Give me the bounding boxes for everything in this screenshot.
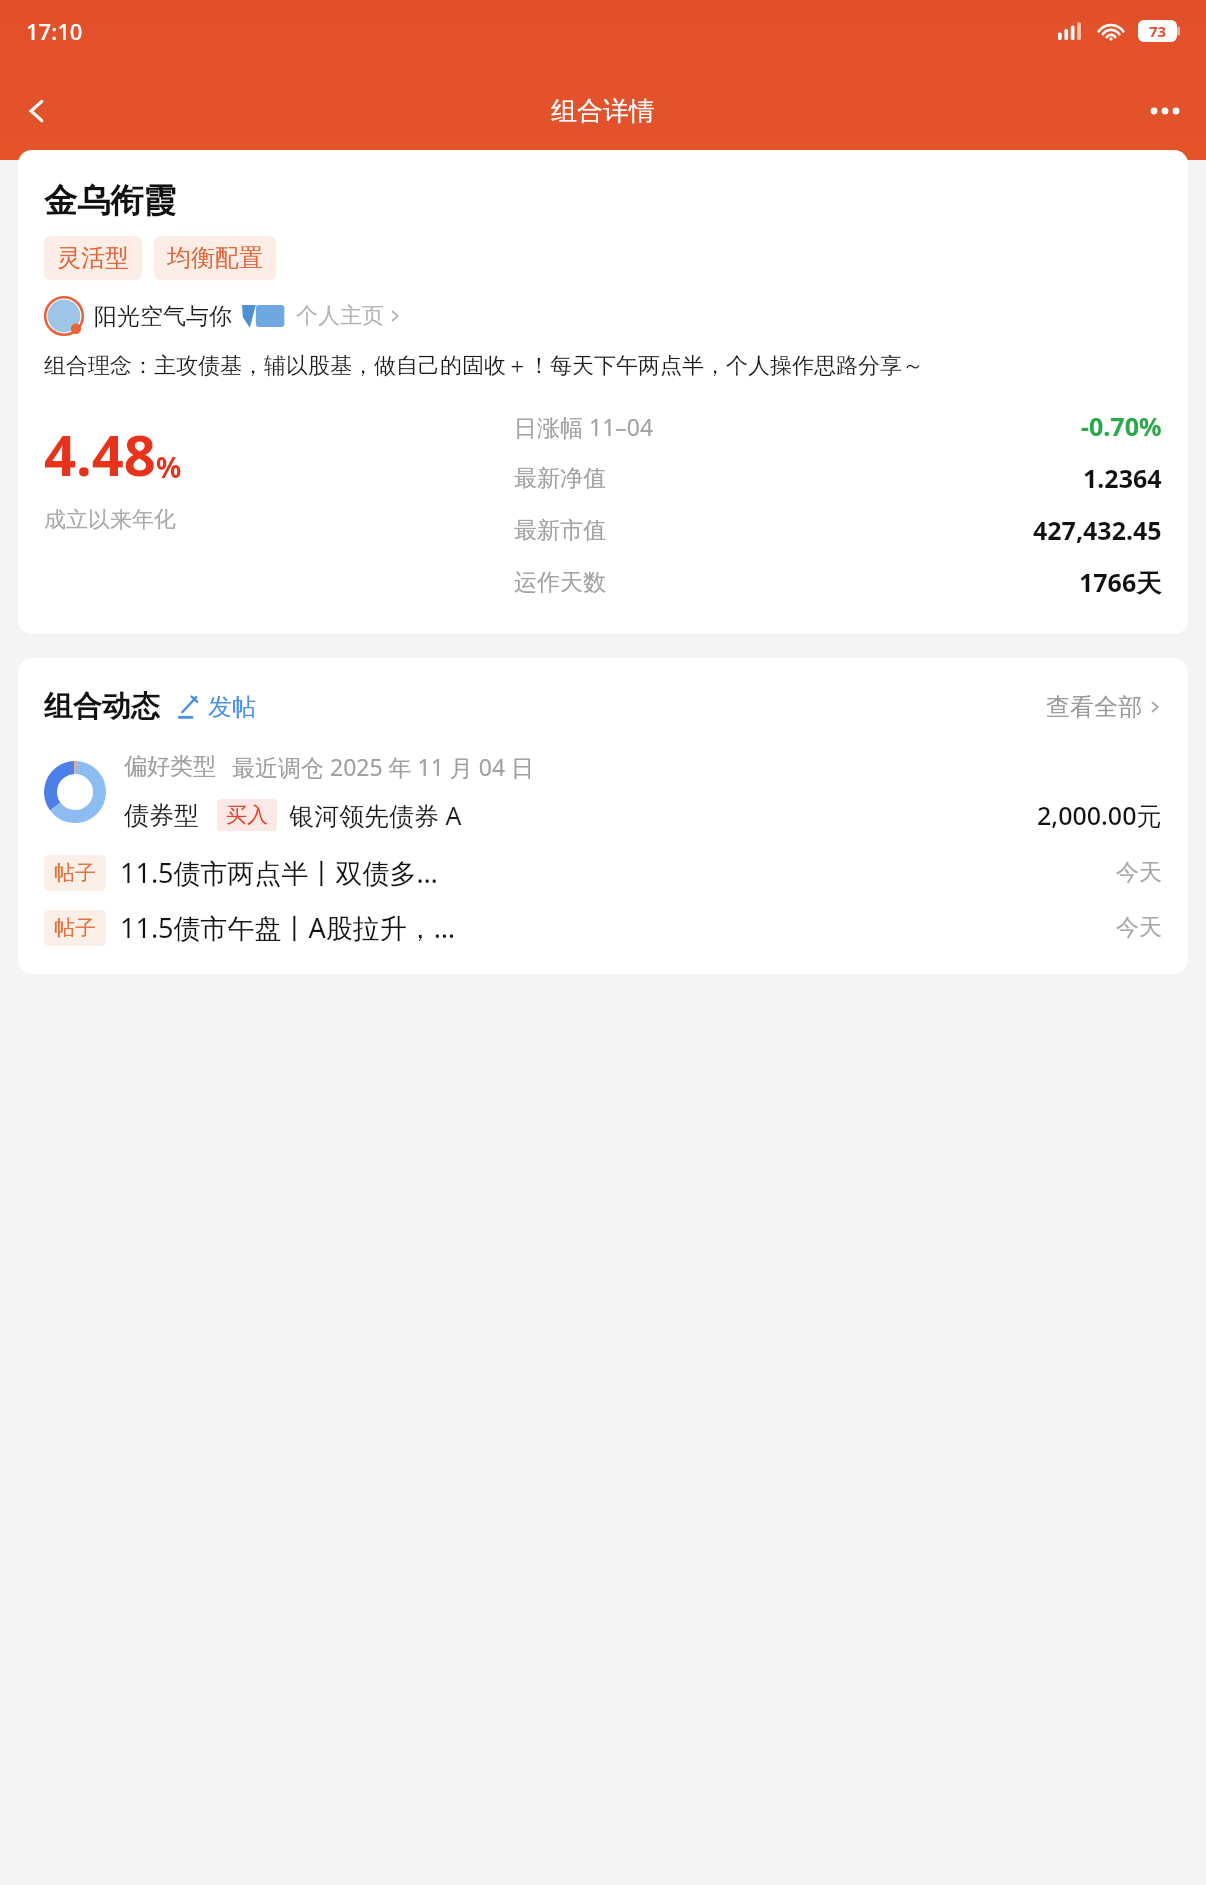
button[interactable]: Back	[8, 82, 66, 140]
staticText: 查看全部	[1046, 692, 1142, 722]
staticText: 银河领先债券 A	[289, 798, 462, 832]
staticText: 组合动态	[44, 688, 160, 725]
button[interactable]: 查看全部	[1046, 692, 1162, 722]
staticText: %	[156, 448, 182, 486]
staticText: 组合详情	[551, 95, 655, 128]
staticText: 帖子	[54, 915, 96, 941]
staticText: 最新净值	[514, 464, 606, 493]
staticText: 金乌衔霞	[44, 180, 176, 222]
staticText: 11.5债市午盘丨A股拉升，…	[120, 909, 456, 946]
staticText: 1766天	[1079, 565, 1162, 599]
staticText: 最新市值	[514, 516, 606, 545]
staticText: 帖子	[54, 860, 96, 886]
staticText: 1.2364	[1083, 461, 1162, 495]
staticText: 运作天数	[514, 568, 606, 597]
button[interactable]: More options	[1136, 82, 1194, 140]
staticText: 发帖	[208, 692, 256, 722]
staticText: 427,432.45	[1033, 513, 1162, 547]
button[interactable]: 发帖	[176, 692, 256, 722]
staticText: 组合理念：主攻债基，辅以股基，做自己的固收＋！每天下午两点半，个人操作思路分享～	[44, 352, 924, 380]
staticText: 2,000.00元	[1037, 798, 1162, 832]
staticText: 买入	[226, 802, 268, 828]
staticText: 灵活型	[57, 243, 129, 273]
staticText: 17:10	[26, 16, 83, 46]
staticText: 73	[1149, 21, 1167, 41]
staticText: 11.5债市两点半丨双债多…	[120, 854, 438, 891]
staticText: -0.70%	[1081, 409, 1162, 443]
button[interactable]: 偏好类型	[44, 751, 1162, 832]
staticText: 今天	[1116, 913, 1162, 942]
staticText: 最近调仓 2025 年 11 月 04 日	[232, 751, 535, 782]
staticText: 日涨幅 11–04	[514, 411, 654, 442]
staticText: 均衡配置	[167, 243, 263, 273]
button[interactable]: 帖子	[44, 909, 1162, 946]
staticText: 成立以来年化	[44, 506, 176, 534]
staticText: 债券型	[124, 800, 199, 831]
staticText: 阳光空气与你	[94, 302, 232, 331]
staticText: 4.48	[44, 416, 156, 492]
button[interactable]: 帖子	[44, 854, 1162, 891]
staticText: 偏好类型	[124, 752, 216, 781]
staticText: 个人主页	[296, 302, 384, 330]
button[interactable]: 阳光空气与你	[44, 296, 402, 336]
staticText: 今天	[1116, 858, 1162, 887]
